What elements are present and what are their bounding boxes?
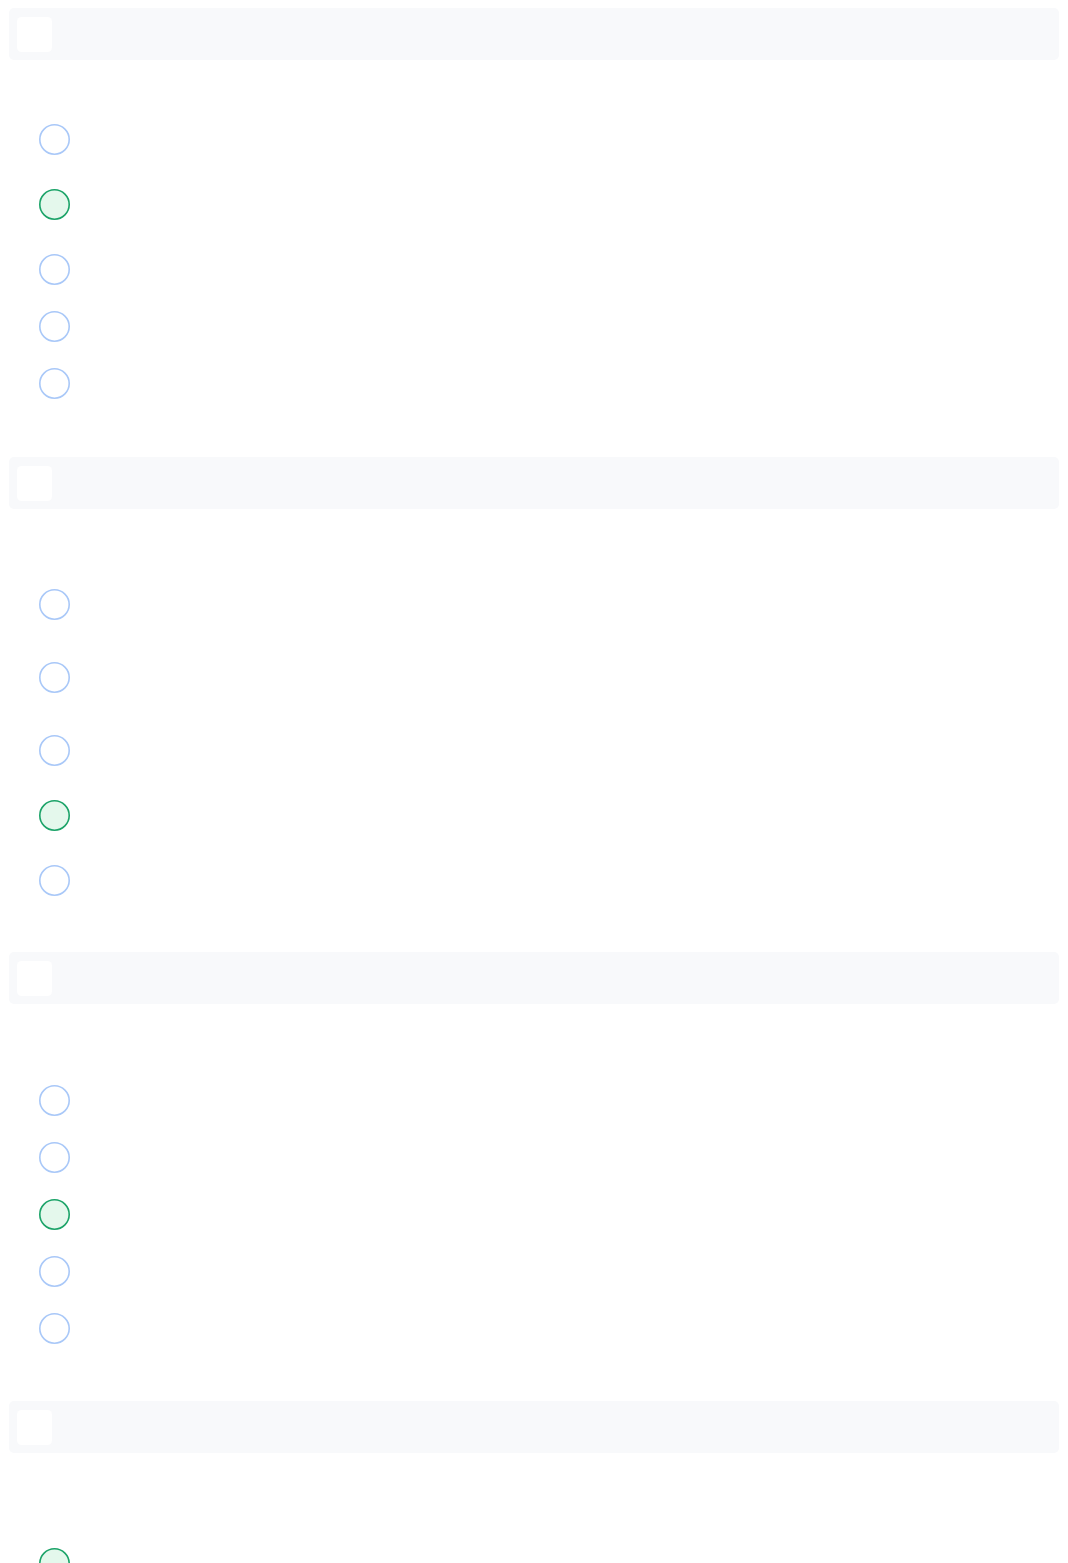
button[interactable]: Not rested at all	[0, 111, 1068, 168]
button[interactable]: A short walk, some stretching, or light …	[0, 633, 1068, 722]
button[interactable]: Never	[0, 1072, 1068, 1129]
button[interactable]: Fully rested	[0, 355, 1068, 412]
button[interactable]: Often	[0, 1243, 1068, 1300]
button[interactable]: More than an hour	[0, 852, 1068, 909]
button[interactable]: Sometimes	[0, 1186, 1068, 1243]
button[interactable]: About thirty minutes	[0, 722, 1068, 779]
button[interactable]: Rarely	[0, 1129, 1068, 1186]
button[interactable]: Moderately rested	[0, 241, 1068, 298]
button[interactable]: Very unbalanced	[0, 1535, 1068, 1563]
button[interactable]: Always	[0, 1300, 1068, 1357]
button[interactable]: Roughly an hour of moderate exercise	[0, 779, 1068, 852]
button[interactable]: Quite rested	[0, 298, 1068, 355]
button[interactable]: None at all	[0, 576, 1068, 633]
button[interactable]: Slightly rested - I woke up several time…	[0, 168, 1068, 241]
